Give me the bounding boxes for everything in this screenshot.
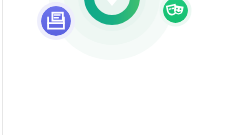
- button[interactable]: Entertainment: [163, 0, 188, 23]
- button[interactable]: Inbox: [41, 6, 71, 36]
